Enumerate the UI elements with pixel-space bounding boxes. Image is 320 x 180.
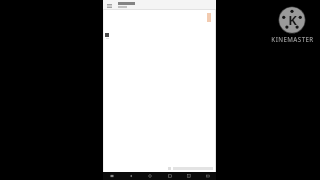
button[interactable]: Back	[124, 172, 137, 180]
staticText: K	[288, 11, 297, 29]
button[interactable]: Menu	[106, 1, 113, 10]
button[interactable]: Recents	[105, 172, 118, 180]
button[interactable]: Apps	[182, 172, 195, 180]
button[interactable]: Home	[143, 172, 156, 180]
staticText: KINEMASTER	[271, 35, 314, 43]
button[interactable]: Camera	[201, 172, 214, 180]
button[interactable]: Screenshot	[163, 172, 176, 180]
